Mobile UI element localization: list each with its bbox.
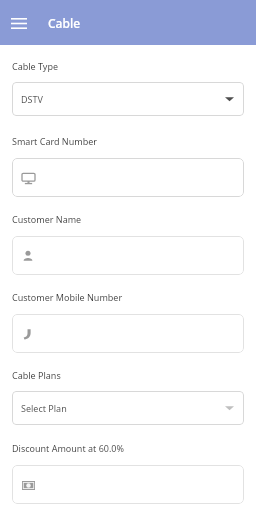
staticText: DSTV [21, 93, 43, 105]
button[interactable]: DSTV [12, 82, 244, 116]
button[interactable] [12, 314, 244, 353]
button[interactable] [12, 236, 244, 275]
button[interactable] [12, 158, 244, 197]
staticText: Cable Plans [12, 369, 61, 381]
button[interactable]: Select Plan [12, 391, 244, 425]
staticText: Select Plan [21, 402, 67, 414]
staticText: Cable Type [12, 60, 59, 72]
staticText: Customer Mobile Number [12, 291, 123, 303]
staticText: Smart Card Number [12, 135, 98, 147]
button[interactable] [12, 465, 244, 504]
button[interactable]: Open navigation menu [6, 10, 32, 36]
staticText: Cable [48, 15, 81, 31]
staticText: Discount Amount at 60.0% [12, 442, 124, 454]
staticText: Customer Name [12, 213, 82, 225]
